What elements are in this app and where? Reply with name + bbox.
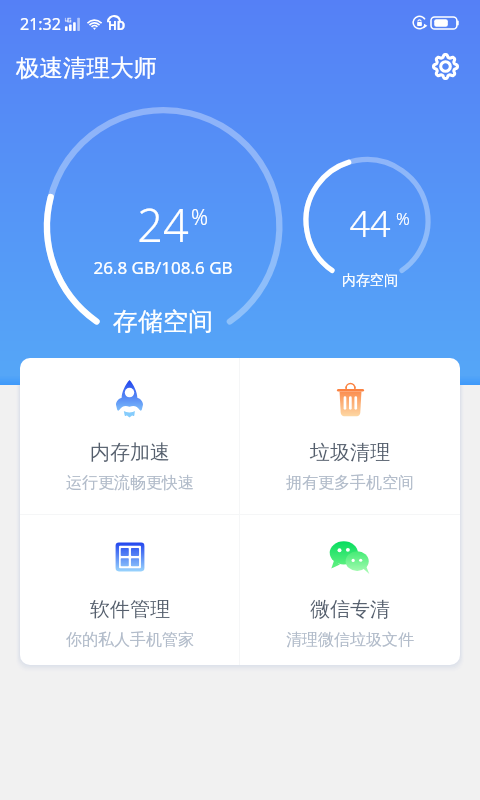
staticText: 内存加速 [90,440,170,465]
staticText: 26.8 GB/108.6 GB [63,256,263,279]
button[interactable]: 垃圾清理 [240,358,460,493]
staticText: 你的私人手机管家 [66,630,194,650]
button[interactable]: Settings [428,49,462,83]
staticText: 极速清理大师 [16,53,157,83]
staticText: % [191,203,209,232]
button[interactable]: 软件管理 [20,515,239,650]
staticText: 软件管理 [90,597,170,622]
staticText: 微信专清 [310,597,390,622]
button[interactable]: 微信专清 [240,515,460,650]
staticText: 运行更流畅更快速 [66,473,194,493]
staticText: 存储空间 [63,306,263,337]
button[interactable]: 内存加速 [20,358,239,493]
staticText: % [396,207,410,230]
staticText: 44 [300,199,440,248]
staticText: 内存空间 [300,272,440,290]
staticText: 24 [63,194,263,255]
staticText: 清理微信垃圾文件 [286,630,414,650]
staticText: 垃圾清理 [310,440,390,465]
staticText: 拥有更多手机空间 [286,473,414,493]
staticText: HD [108,18,126,34]
staticText: 21:32 [20,13,61,35]
